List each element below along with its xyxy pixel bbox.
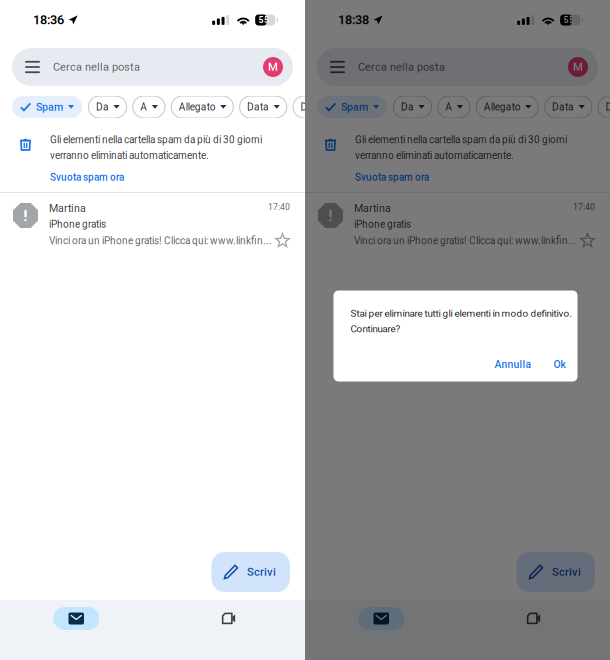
staticText: Stai per eliminare tutti gli elementi in… xyxy=(350,307,572,319)
button[interactable]: Ok xyxy=(531,358,565,370)
staticText: Cerca nella posta xyxy=(358,60,445,73)
button[interactable]: A xyxy=(133,96,165,118)
staticText: Ok xyxy=(553,358,565,370)
staticText: Allegato xyxy=(484,101,521,113)
staticText: 17:40 xyxy=(268,202,290,212)
staticText: 18:38 xyxy=(338,13,369,27)
button[interactable]: Spam xyxy=(12,96,82,118)
button[interactable]: Martina xyxy=(305,193,610,248)
button[interactable]: Allegato xyxy=(171,96,233,118)
staticText: Annulla xyxy=(494,358,531,370)
staticText: 5 xyxy=(264,15,269,25)
button[interactable]: Meet xyxy=(152,604,305,633)
staticText: 5 xyxy=(259,15,264,25)
staticText: iPhone gratis xyxy=(354,218,411,230)
staticText: Vinci ora un iPhone gratis! Clicca qui: … xyxy=(49,235,272,247)
staticText: Scrivi xyxy=(247,565,276,578)
staticText: Data xyxy=(247,101,269,113)
staticText: Vinci ora un iPhone gratis! Clicca qui: … xyxy=(354,235,577,247)
staticText: Gli elementi nella cartella spam da più … xyxy=(50,134,262,146)
button[interactable]: Posta xyxy=(0,604,152,633)
staticText: Spam xyxy=(341,101,368,113)
button[interactable]: Da xyxy=(393,96,432,118)
staticText: Da xyxy=(401,101,414,113)
button[interactable]: Cerca nella posta xyxy=(317,48,598,86)
staticText: Cerca nella posta xyxy=(53,60,140,73)
button[interactable]: Data xyxy=(240,96,287,118)
staticText: A xyxy=(140,101,147,113)
staticText: Scrivi xyxy=(552,565,581,578)
staticText: 5 xyxy=(569,15,574,25)
button[interactable]: Annulla xyxy=(494,358,531,370)
button[interactable]: Allegato xyxy=(476,96,538,118)
button[interactable]: Meet xyxy=(457,604,610,633)
button[interactable]: Spam xyxy=(317,96,387,118)
button[interactable]: Martina xyxy=(0,193,305,248)
button[interactable]: Dimen xyxy=(598,96,610,118)
button[interactable]: Dimen xyxy=(293,96,347,118)
staticText: Spam xyxy=(36,101,63,113)
staticText: Martina xyxy=(354,202,391,214)
staticText: Data xyxy=(552,101,574,113)
button[interactable]: Svuota spam ora xyxy=(355,161,429,183)
button[interactable]: Da xyxy=(88,96,127,118)
staticText: Martina xyxy=(49,202,86,214)
staticText: Gli elementi nella cartella spam da più … xyxy=(355,134,567,146)
staticText: Svuota spam ora xyxy=(355,171,429,183)
staticText: verranno eliminati automaticamente. xyxy=(50,150,209,161)
staticText: iPhone gratis xyxy=(49,218,106,230)
staticText: Svuota spam ora xyxy=(50,171,124,183)
button[interactable]: Posta xyxy=(305,604,457,633)
staticText: 5 xyxy=(564,15,569,25)
staticText: verranno eliminati automaticamente. xyxy=(355,150,514,161)
button[interactable]: A xyxy=(438,96,470,118)
staticText: A xyxy=(445,101,452,113)
staticText: Da xyxy=(96,101,109,113)
staticText: M xyxy=(573,60,583,74)
button[interactable]: Svuota spam ora xyxy=(50,161,124,183)
button[interactable]: Data xyxy=(545,96,592,118)
staticText: Dimen xyxy=(300,101,329,113)
staticText: Continuare? xyxy=(350,323,400,335)
staticText: M xyxy=(268,60,278,74)
button[interactable]: Scrivi xyxy=(516,552,595,592)
staticText: Dimen xyxy=(605,101,610,113)
button[interactable]: Cerca nella posta xyxy=(12,48,293,86)
staticText: 17:40 xyxy=(573,202,595,212)
button[interactable]: Scrivi xyxy=(211,552,290,592)
staticText: 18:36 xyxy=(33,13,64,27)
staticText: Allegato xyxy=(179,101,216,113)
